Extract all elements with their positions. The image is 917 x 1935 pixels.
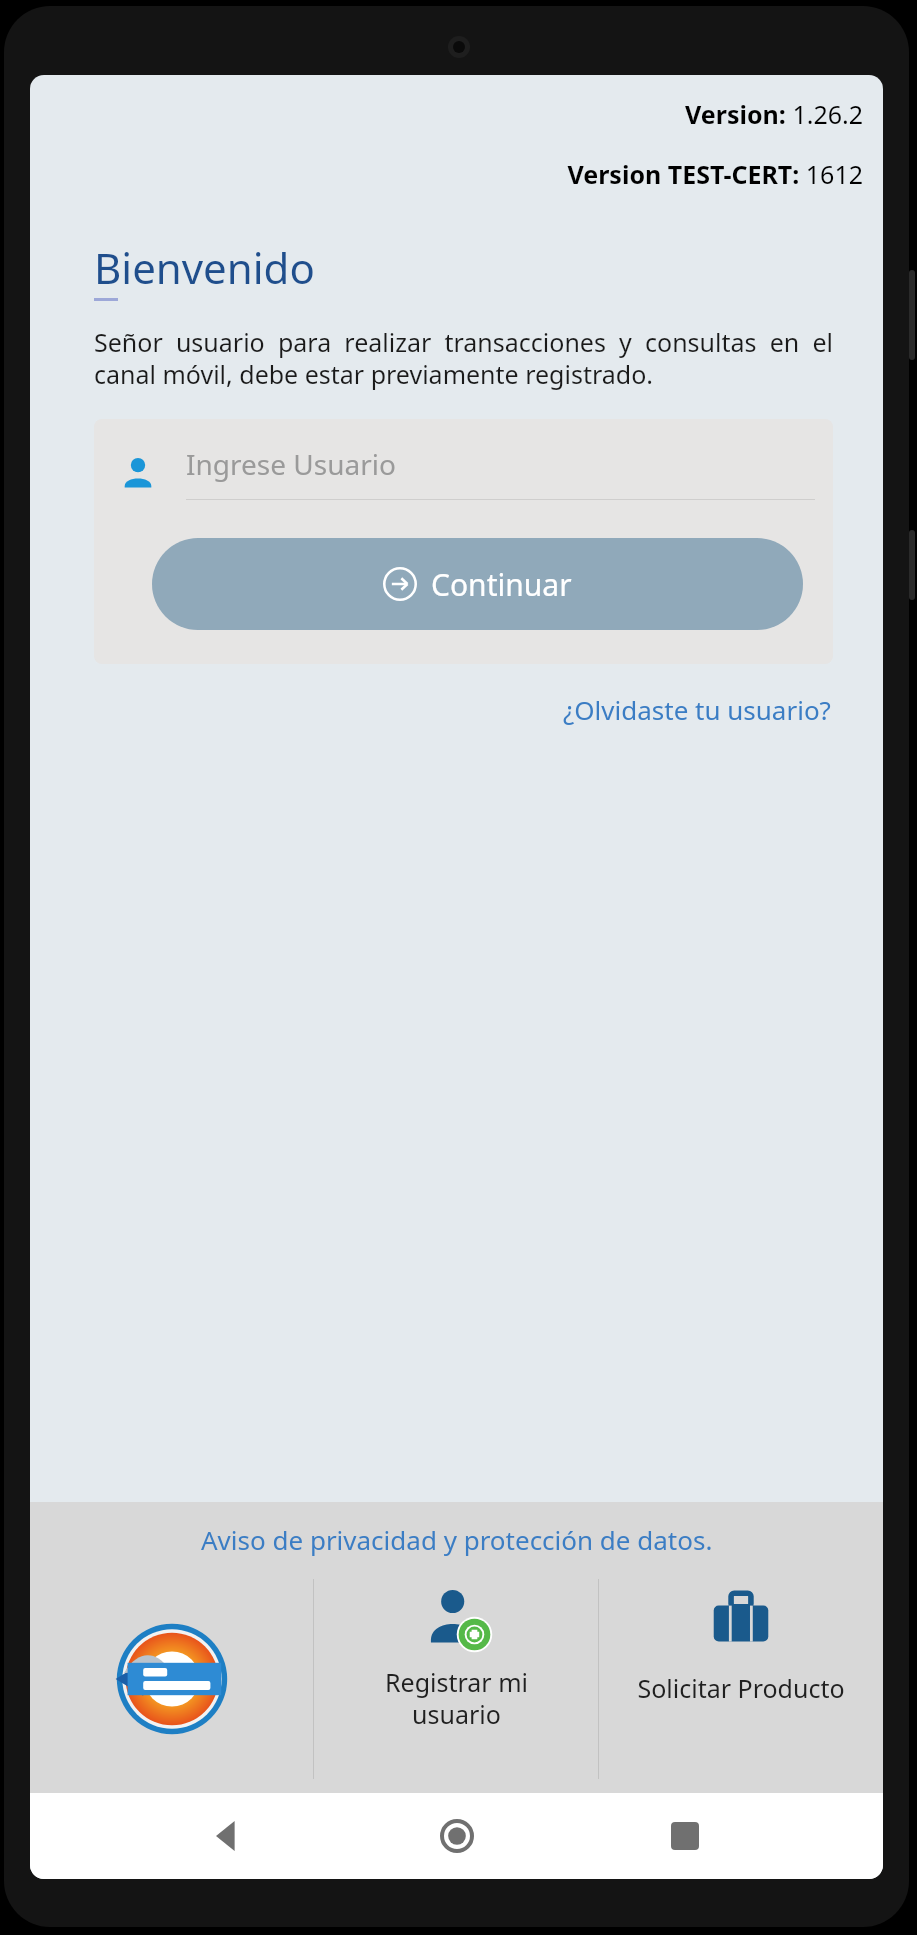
button[interactable]: Registrar mi usuario [314, 1579, 598, 1779]
staticText: Solicitar Producto [637, 1671, 845, 1705]
staticText: Aviso de privacidad y protección de dato… [201, 1522, 713, 1557]
other: Usuario [120, 455, 156, 491]
button[interactable]: Aviso de privacidad y protección de dato… [30, 1522, 883, 1557]
staticText: Señor usuario para realizar transaccione… [94, 325, 833, 391]
staticText: Registrar mi usuario [385, 1665, 528, 1731]
button[interactable]: Usuario [120, 445, 815, 500]
button[interactable]: Back [198, 1806, 258, 1866]
staticText: Ingrese Usuario [186, 445, 396, 483]
staticText: ¿Olvidaste tu usuario? [563, 692, 831, 727]
button[interactable]: Continuar [152, 538, 803, 630]
staticText: Version TEST-CERT: 1612 [30, 157, 863, 191]
staticText: Version: 1.26.2 [30, 97, 863, 131]
button[interactable]: Solicitar Producto [599, 1579, 883, 1779]
button[interactable]: Red CoopCentral [30, 1579, 313, 1779]
other: Solicitar Producto [710, 1587, 772, 1649]
other: Registrar mi usuario [423, 1587, 489, 1653]
staticText: Continuar [431, 564, 572, 605]
staticText: Bienvenido [94, 239, 315, 296]
button[interactable]: Recent apps [655, 1806, 715, 1866]
button[interactable]: Home [427, 1806, 487, 1866]
button[interactable]: ¿Olvidaste tu usuario? [561, 688, 833, 731]
